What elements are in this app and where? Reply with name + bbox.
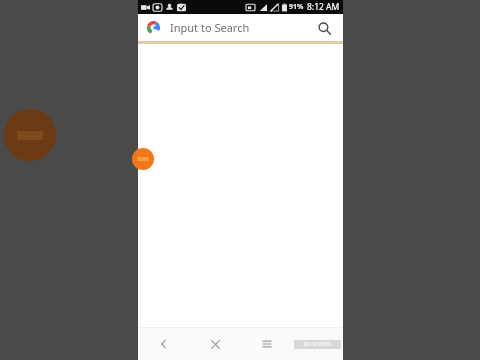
- button[interactable]: Back: [138, 328, 190, 360]
- staticText: Input to Search: [170, 20, 314, 35]
- button[interactable]: Close: [190, 328, 241, 360]
- button[interactable]: Search: [314, 18, 334, 38]
- button[interactable]: [132, 148, 154, 170]
- staticText: 8:12 AM: [307, 1, 340, 13]
- button[interactable]: Input to Search: [138, 14, 343, 41]
- button[interactable]: Recent apps: [241, 328, 292, 360]
- staticText: 91%: [289, 2, 304, 12]
- staticText: DU SCREEN RECORDER: [294, 341, 341, 348]
